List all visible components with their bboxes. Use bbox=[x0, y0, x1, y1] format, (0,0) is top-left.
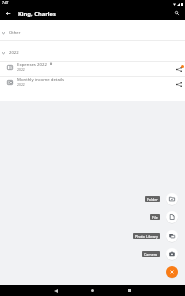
staticText: 2022 bbox=[9, 50, 19, 56]
button[interactable]: Camera bbox=[142, 251, 160, 257]
button[interactable]: Back bbox=[50, 285, 61, 296]
button[interactable]: Share bbox=[172, 77, 185, 91]
staticText: Folder bbox=[147, 197, 158, 202]
button[interactable]: 2022 bbox=[0, 41, 185, 61]
button[interactable]: File bbox=[150, 214, 160, 220]
staticText: Other bbox=[9, 30, 21, 36]
staticText: Camera bbox=[144, 252, 158, 257]
button[interactable]: File bbox=[166, 211, 178, 223]
staticText: King, Charles bbox=[18, 10, 56, 18]
button[interactable]: Recents bbox=[124, 285, 135, 296]
staticText: Photo Library bbox=[135, 234, 158, 239]
button[interactable]: Share bbox=[172, 62, 185, 76]
button[interactable]: Folder bbox=[145, 196, 160, 202]
staticText: 2022 bbox=[17, 67, 25, 72]
button[interactable]: Home bbox=[87, 285, 98, 296]
staticText: Expenses 2022 bbox=[17, 61, 47, 67]
button[interactable]: Back bbox=[3, 8, 14, 20]
button[interactable]: Monthly income details bbox=[0, 77, 185, 91]
button[interactable]: Other bbox=[0, 20, 185, 40]
button[interactable]: Camera bbox=[166, 248, 178, 260]
staticText: 2022 bbox=[17, 82, 25, 87]
staticText: 7:47 bbox=[2, 1, 9, 5]
staticText: File bbox=[152, 215, 158, 220]
button[interactable]: Close menu bbox=[166, 266, 178, 278]
button[interactable]: Folder bbox=[166, 193, 178, 205]
button[interactable]: Expenses 2022 bbox=[0, 62, 185, 76]
button[interactable]: Photo Library bbox=[166, 230, 178, 242]
button[interactable]: Search bbox=[172, 8, 183, 20]
staticText: Monthly income details bbox=[17, 76, 65, 82]
button[interactable]: Photo Library bbox=[133, 233, 160, 239]
